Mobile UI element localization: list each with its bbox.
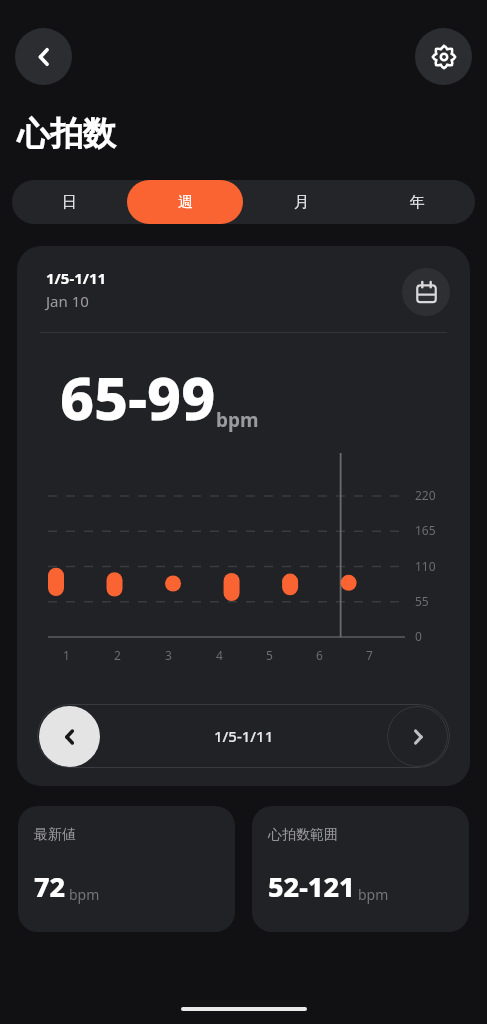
staticText: bpm [69, 885, 100, 904]
staticText: 6 [316, 647, 323, 663]
staticText: 1 [63, 647, 70, 663]
staticText: 220 [415, 487, 436, 503]
staticText: 1/5-1/11 [214, 726, 274, 746]
staticText: 7 [366, 647, 373, 663]
button[interactable]: 最新値 [18, 806, 235, 932]
button[interactable]: Previous week [39, 706, 100, 767]
button[interactable]: 年 [359, 180, 475, 224]
staticText: 心拍数範囲 [268, 826, 338, 844]
button[interactable]: Calendar [402, 268, 450, 316]
staticText: 55 [415, 593, 429, 609]
staticText: 日 [62, 193, 77, 212]
button[interactable]: Next week [387, 706, 448, 767]
staticText: 1/5-1/11 [46, 268, 107, 288]
staticText: 最新値 [34, 826, 76, 844]
staticText: 52-121 [268, 868, 355, 905]
staticText: 165 [415, 522, 436, 538]
button[interactable]: 日 [12, 180, 127, 224]
staticText: 0 [415, 628, 422, 644]
button[interactable]: 月 [243, 180, 359, 224]
button[interactable]: Settings [415, 28, 472, 85]
staticText: 2 [114, 647, 121, 663]
staticText: 65-99 [60, 357, 216, 437]
staticText: 5 [266, 647, 273, 663]
button[interactable]: 週 [127, 180, 243, 224]
staticText: 4 [216, 647, 223, 663]
staticText: 72 [34, 868, 66, 905]
staticText: 年 [410, 193, 425, 212]
staticText: 110 [415, 558, 436, 574]
staticText: 月 [294, 193, 309, 212]
staticText: 心拍数 [17, 113, 116, 155]
staticText: Jan 10 [46, 291, 89, 311]
staticText: bpm [358, 885, 389, 904]
button[interactable]: 心拍数範囲 [252, 806, 469, 932]
staticText: 3 [165, 647, 172, 663]
staticText: bpm [216, 407, 259, 433]
button[interactable]: Back [15, 28, 72, 85]
staticText: 週 [178, 193, 193, 212]
